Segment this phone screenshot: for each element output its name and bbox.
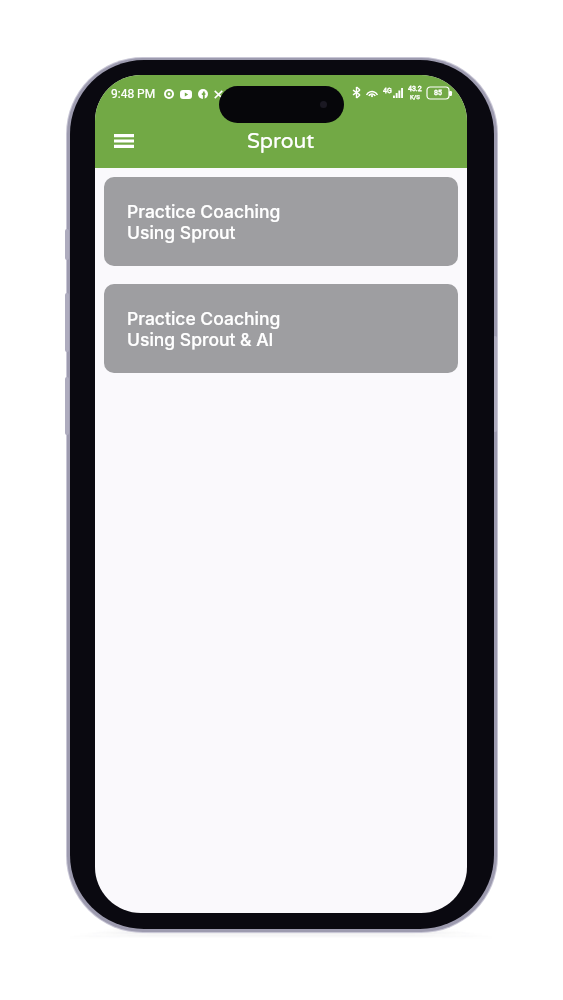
button[interactable]: Practice Coaching Using Sprout	[104, 177, 458, 266]
staticText: 85	[434, 89, 442, 97]
staticText: 4G	[383, 87, 392, 95]
staticText: 43.2	[408, 85, 422, 93]
staticText: 9:48 PM	[111, 87, 156, 101]
button[interactable]: Open navigation menu	[109, 126, 139, 156]
staticText: Sprout	[247, 129, 315, 154]
button[interactable]: Practice Coaching Using Sprout & AI	[104, 284, 458, 373]
staticText: Practice Coaching Using Sprout	[127, 201, 281, 243]
staticText: K/S	[410, 93, 420, 100]
staticText: Practice Coaching Using Sprout & AI	[127, 308, 281, 350]
